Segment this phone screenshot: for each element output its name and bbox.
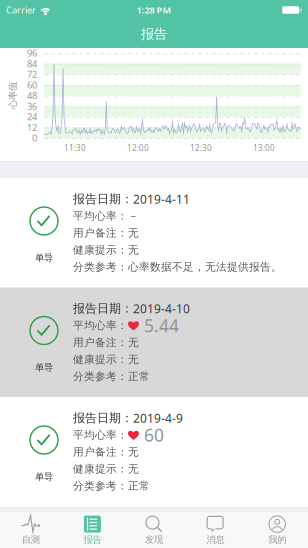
staticText: 健康提示：无 xyxy=(73,353,139,366)
staticText: 报告 xyxy=(83,534,101,545)
staticText: 12 xyxy=(27,121,37,134)
staticText: 1:28 PM xyxy=(136,4,171,16)
staticText: 分类参考：正常 xyxy=(73,370,150,383)
staticText: 11:30 xyxy=(64,143,86,153)
button[interactable]: 消息 xyxy=(185,512,246,548)
staticText: 84 xyxy=(27,57,37,70)
button[interactable]: 发现 xyxy=(123,512,185,548)
staticText: － xyxy=(128,209,139,222)
staticText: 用户备注：无 xyxy=(73,445,139,458)
staticText: 分类参考：正常 xyxy=(73,479,150,492)
staticText: 60 xyxy=(27,79,37,91)
staticText: 报告日期： xyxy=(73,192,133,206)
staticText: 单导 xyxy=(35,362,53,373)
staticText: 36 xyxy=(27,100,37,112)
button[interactable]: 单导 xyxy=(0,178,308,287)
staticText: 用户备注：无 xyxy=(73,336,139,349)
staticText: 发现 xyxy=(145,534,163,545)
staticText: 96 xyxy=(27,47,37,59)
staticText: 0 xyxy=(32,132,37,144)
staticText: 平均心率： xyxy=(73,209,128,222)
staticText: 60 xyxy=(139,423,164,446)
staticText: 5.44 xyxy=(139,314,179,337)
staticText: 12:00 xyxy=(127,143,149,153)
staticText: 分类参考：心率数据不足，无法提供报告。 xyxy=(73,260,282,273)
staticText: 平均心率： xyxy=(73,428,128,441)
button[interactable]: 报告 xyxy=(62,512,123,548)
staticText: 单导 xyxy=(35,252,53,264)
staticText: 12:30 xyxy=(190,143,212,153)
staticText: 48 xyxy=(27,89,37,102)
staticText: 2019-4-10 xyxy=(133,300,190,316)
staticText: 健康提示：无 xyxy=(73,243,139,256)
button[interactable]: 我的 xyxy=(246,512,308,548)
staticText: 自测 xyxy=(22,534,40,545)
staticText: 2019-4-9 xyxy=(133,410,183,426)
staticText: 72 xyxy=(27,68,37,80)
staticText: 单导 xyxy=(35,471,53,483)
staticText: 13:00 xyxy=(253,143,275,153)
button[interactable]: 自测 xyxy=(0,512,62,548)
button[interactable]: 单导 xyxy=(0,287,308,397)
staticText: 报告日期： xyxy=(73,301,133,316)
staticText: 健康提示：无 xyxy=(73,462,139,475)
staticText: 用户备注：无 xyxy=(73,226,139,239)
staticText: 心率值 xyxy=(0,90,26,101)
button[interactable]: 单导 xyxy=(0,397,308,506)
staticText: 报告日期： xyxy=(73,411,133,425)
staticText: Carrier xyxy=(6,4,36,16)
staticText: 报告 xyxy=(141,26,167,42)
staticText: 我的 xyxy=(268,534,286,545)
staticText: 平均心率： xyxy=(73,319,128,332)
staticText: 消息 xyxy=(207,534,225,545)
staticText: 2019-4-11 xyxy=(133,191,190,207)
staticText: 24 xyxy=(27,111,37,123)
